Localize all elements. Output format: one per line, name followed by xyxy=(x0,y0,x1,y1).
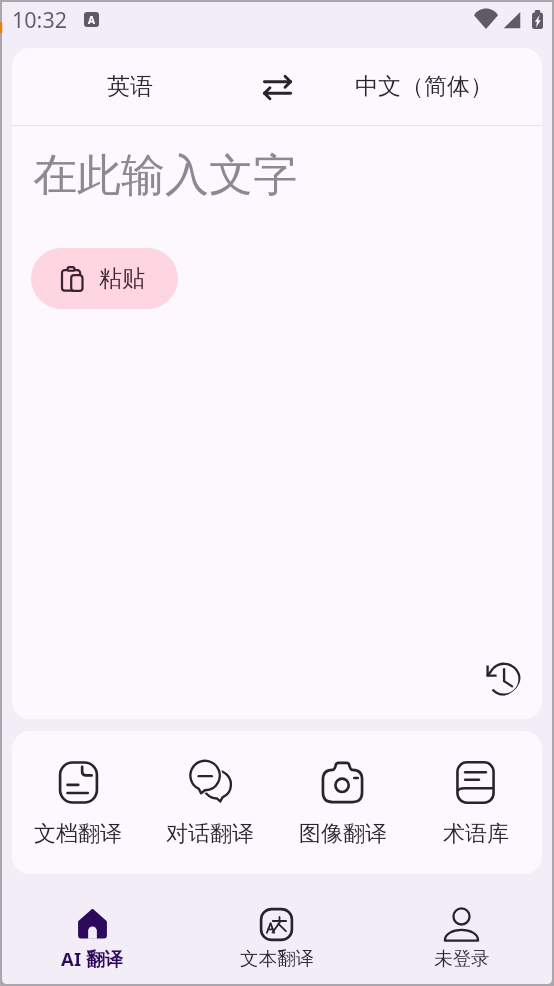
button[interactable]: 粘贴 xyxy=(31,248,178,309)
staticText: A xyxy=(88,13,95,27)
staticText: 未登录 xyxy=(434,947,490,970)
button[interactable]: 未登录 xyxy=(369,875,554,986)
staticText: 在此输入文字 xyxy=(33,148,297,203)
staticText: 对话翻译 xyxy=(166,820,254,848)
button[interactable]: 术语库 xyxy=(409,731,542,874)
button[interactable]: Swap languages xyxy=(248,58,306,116)
button[interactable]: 中文（简体） xyxy=(306,48,542,125)
staticText: 文本翻译 xyxy=(240,947,314,970)
button[interactable]: 图像翻译 xyxy=(276,731,409,874)
button[interactable]: 文本翻译 xyxy=(184,875,369,986)
staticText: 文档翻译 xyxy=(34,820,122,848)
button[interactable]: Translation history xyxy=(479,654,521,696)
staticText: 术语库 xyxy=(443,820,509,848)
staticText: 英语 xyxy=(107,72,153,101)
button[interactable]: 对话翻译 xyxy=(144,731,276,874)
staticText: AI 翻译 xyxy=(61,946,123,971)
staticText: 粘贴 xyxy=(99,264,145,293)
staticText: 10:32 xyxy=(12,5,67,34)
button[interactable]: 英语 xyxy=(12,48,248,125)
staticText: 中文（简体） xyxy=(355,72,493,101)
button[interactable]: AI 翻译 xyxy=(0,875,184,986)
staticText: 图像翻译 xyxy=(299,820,387,848)
button[interactable]: 文档翻译 xyxy=(12,731,144,874)
